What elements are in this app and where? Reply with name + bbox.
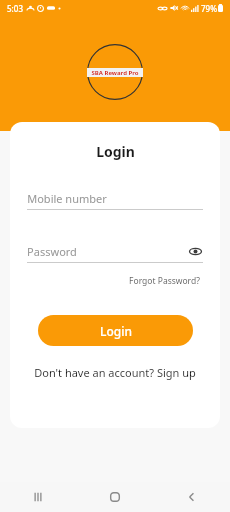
staticText: Login <box>100 323 132 339</box>
staticText: Login <box>96 142 135 161</box>
button[interactable]: Don't have an account? Sign up <box>31 363 199 382</box>
staticText: SBA Reward Pro <box>91 69 139 77</box>
staticText: Mobile number <box>27 191 107 206</box>
staticText: 5:03 <box>7 3 23 14</box>
button[interactable]: Show password <box>187 243 203 259</box>
button[interactable]: Back <box>153 482 230 512</box>
staticText: Password <box>27 244 77 259</box>
button[interactable]: Login <box>38 315 193 346</box>
staticText: Forgot Password? <box>129 275 200 287</box>
button[interactable]: Recent apps <box>0 482 76 512</box>
button[interactable]: Home <box>76 482 153 512</box>
staticText: Don't have an account? Sign up <box>34 365 196 380</box>
button[interactable]: Forgot Password? <box>127 273 202 289</box>
staticText: 79% <box>201 3 217 14</box>
